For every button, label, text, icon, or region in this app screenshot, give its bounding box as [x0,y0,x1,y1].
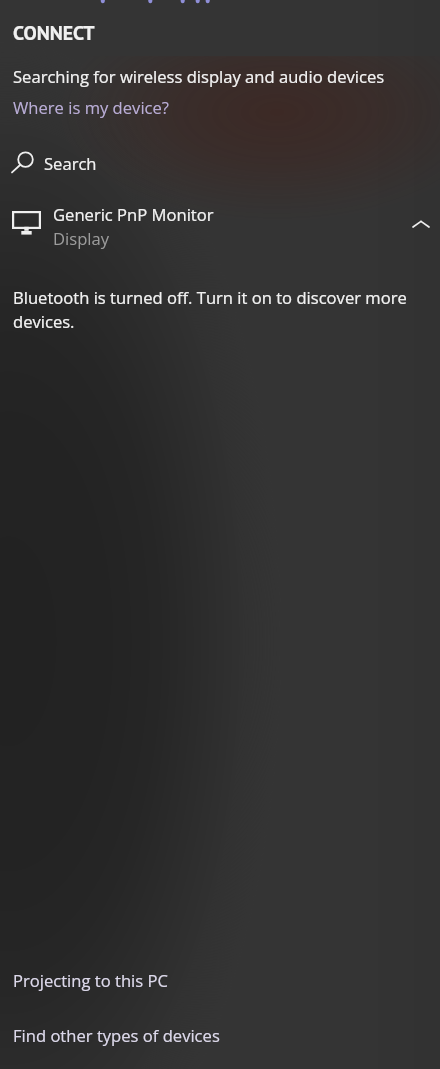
button[interactable]: Generic PnP Monitor [0,203,440,255]
staticText: Searching for wireless display and audio… [13,65,385,88]
staticText: Generic PnP Monitor [53,203,214,226]
button[interactable]: Projecting to this PC [13,969,168,992]
staticText: Bluetooth is turned off. Turn it on to d… [13,286,418,332]
staticText: CONNECT [13,20,95,46]
button[interactable]: Where is my device? [13,96,169,119]
button[interactable]: Find other types of devices [13,1024,220,1047]
other: Search [11,152,33,174]
button[interactable]: Collapse [402,203,440,247]
staticText: Display [53,227,110,250]
button[interactable]: Search [0,144,440,182]
staticText: Search [44,152,97,175]
